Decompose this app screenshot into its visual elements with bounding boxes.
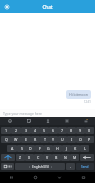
staticText: 5 <box>43 128 46 133</box>
staticText: Send <box>81 165 89 169</box>
button[interactable]: I <box>67 136 76 143</box>
button[interactable]: Period <box>66 163 75 170</box>
button[interactable]: Y <box>49 136 58 143</box>
button[interactable]: Navigate up <box>0 0 13 13</box>
button[interactable]: R <box>31 136 40 143</box>
button[interactable]: D <box>26 145 35 152</box>
button[interactable]: K <box>71 145 80 152</box>
button[interactable]: C <box>34 154 43 161</box>
button[interactable]: Q <box>1 136 11 143</box>
staticText: 8 <box>70 128 73 133</box>
button[interactable]: P <box>85 136 94 143</box>
staticText: P <box>88 137 91 142</box>
button[interactable]: J <box>62 145 71 152</box>
staticText: Hi bitmoon <box>69 92 88 97</box>
button[interactable]: 1 <box>1 127 11 134</box>
staticText: Chat <box>42 4 53 10</box>
button[interactable]: Shift <box>1 154 15 161</box>
staticText: H <box>56 146 59 151</box>
staticText: 0 <box>88 128 91 133</box>
button[interactable]: 8 <box>67 127 76 134</box>
button[interactable]: Voice input <box>38 117 57 125</box>
staticText: › <box>51 165 52 169</box>
staticText: W <box>14 137 18 142</box>
button[interactable]: Backspace <box>80 154 94 161</box>
button[interactable]: Hide keyboard <box>71 172 95 183</box>
button[interactable]: 4 <box>31 127 40 134</box>
staticText: 2 <box>15 128 18 133</box>
staticText: 7 <box>61 128 64 133</box>
button[interactable]: O <box>76 136 85 143</box>
button[interactable]: Home <box>23 172 47 183</box>
button[interactable]: B <box>52 154 61 161</box>
button[interactable]: Symbols <box>1 163 14 170</box>
button[interactable]: Hi bitmoon <box>66 90 91 99</box>
button[interactable]: E <box>21 136 31 143</box>
staticText: O <box>79 137 82 142</box>
staticText: X <box>28 155 31 160</box>
staticText: V <box>46 155 49 160</box>
button[interactable]: Back <box>47 172 71 183</box>
staticText: 9 <box>79 128 82 133</box>
button[interactable]: 2 <box>11 127 21 134</box>
button[interactable]: A <box>7 145 17 152</box>
button[interactable]: X <box>25 154 34 161</box>
staticText: 4 <box>34 128 37 133</box>
button[interactable]: G <box>44 145 53 152</box>
button[interactable]: Sticker <box>19 117 38 125</box>
staticText: English(US) <box>32 165 49 169</box>
staticText: Y <box>52 137 55 142</box>
staticText: Type your message here <box>3 111 42 116</box>
staticText: 12:31 <box>84 100 91 104</box>
staticText: Q <box>5 137 8 142</box>
staticText: B <box>55 155 58 160</box>
staticText: D <box>29 146 32 151</box>
staticText: F <box>39 146 41 151</box>
button[interactable]: U <box>58 136 67 143</box>
button[interactable]: S <box>17 145 26 152</box>
button[interactable]: T <box>40 136 49 143</box>
button[interactable]: More <box>76 117 95 125</box>
staticText: U <box>61 137 64 142</box>
staticText: R <box>34 137 37 142</box>
staticText: 3 <box>25 128 28 133</box>
button[interactable]: Type your message here <box>0 109 95 117</box>
staticText: L <box>84 146 86 151</box>
button[interactable]: M <box>70 154 79 161</box>
button[interactable]: 7 <box>58 127 67 134</box>
button[interactable]: Settings <box>57 117 76 125</box>
staticText: ‹ <box>29 165 30 169</box>
staticText: N <box>64 155 67 160</box>
staticText: C <box>37 155 40 160</box>
button[interactable]: F <box>35 145 44 152</box>
staticText: S <box>21 146 23 151</box>
button[interactable]: L <box>80 145 89 152</box>
button[interactable]: 9 <box>76 127 85 134</box>
staticText: T <box>44 137 46 142</box>
button[interactable]: Emoji <box>0 117 19 125</box>
staticText: G <box>47 146 50 151</box>
button[interactable]: Recents <box>0 172 23 183</box>
staticText: I <box>71 137 73 142</box>
staticText: E <box>25 137 27 142</box>
staticText: Z <box>19 155 22 160</box>
staticText: M <box>73 155 77 160</box>
button[interactable]: ‹ <box>15 163 65 170</box>
staticText: J <box>66 146 67 151</box>
staticText: K <box>74 146 77 151</box>
button[interactable]: Send <box>76 163 94 170</box>
button[interactable]: 3 <box>21 127 31 134</box>
button[interactable]: 0 <box>85 127 94 134</box>
button[interactable]: 5 <box>40 127 49 134</box>
button[interactable]: Z <box>16 154 25 161</box>
button[interactable]: H <box>53 145 62 152</box>
button[interactable]: W <box>11 136 21 143</box>
staticText: A <box>11 146 14 151</box>
button[interactable]: V <box>43 154 52 161</box>
button[interactable]: 6 <box>49 127 58 134</box>
staticText: 1 <box>5 128 8 133</box>
button[interactable]: N <box>61 154 70 161</box>
staticText: 6 <box>52 128 55 133</box>
